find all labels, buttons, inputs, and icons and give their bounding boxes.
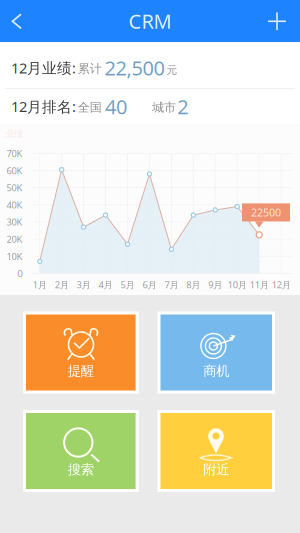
staticText: 1月: [33, 278, 47, 291]
staticText: 附近: [203, 461, 229, 478]
button[interactable]: 提醒: [23, 311, 139, 393]
staticText: 50K: [6, 181, 22, 194]
staticText: 城市: [152, 100, 176, 115]
staticText: 40: [105, 93, 127, 120]
staticText: CRM: [128, 8, 171, 34]
button[interactable]: 商机: [157, 311, 275, 393]
staticText: 全国: [78, 100, 102, 115]
staticText: 6月: [142, 278, 156, 291]
staticText: 22500: [251, 205, 281, 219]
button[interactable]: Back: [0, 0, 46, 42]
button[interactable]: Add: [254, 0, 300, 42]
button[interactable]: 附近: [157, 410, 275, 492]
staticText: 4月: [98, 278, 112, 291]
staticText: 12月: [272, 278, 291, 291]
button[interactable]: 搜索: [23, 410, 139, 492]
staticText: 70K: [6, 147, 22, 160]
staticText: 0: [17, 267, 22, 280]
staticText: 10K: [6, 250, 22, 262]
staticText: 业绩: [5, 128, 23, 139]
staticText: 商机: [203, 363, 229, 379]
staticText: 2月: [55, 278, 69, 291]
staticText: 提醒: [68, 363, 94, 379]
staticText: 搜索: [68, 461, 94, 478]
staticText: 3月: [77, 278, 91, 291]
staticText: 20K: [6, 233, 22, 245]
staticText: 12月业绩:: [11, 58, 76, 77]
staticText: 8月: [186, 278, 200, 291]
staticText: 60K: [6, 164, 22, 177]
staticText: 10月: [228, 278, 247, 291]
staticText: 30K: [6, 216, 22, 228]
staticText: 22,500: [105, 54, 165, 81]
staticText: 2: [177, 93, 188, 120]
staticText: 11月: [250, 278, 269, 291]
staticText: 12月排名:: [11, 97, 76, 116]
staticText: 40K: [6, 199, 22, 211]
staticText: 7月: [164, 278, 178, 291]
staticText: 9月: [208, 278, 222, 291]
staticText: 元: [166, 64, 177, 77]
staticText: 累计: [78, 61, 102, 76]
staticText: 5月: [120, 278, 134, 291]
